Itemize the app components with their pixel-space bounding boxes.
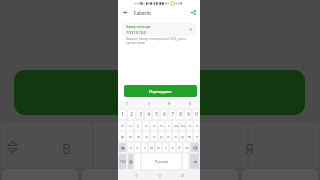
button[interactable]: 4 [145, 110, 151, 119]
staticText: В [189, 102, 192, 106]
button[interactable]: Back [120, 7, 131, 18]
staticText: 8 [179, 111, 182, 118]
button[interactable]: 5 [153, 110, 159, 119]
button[interactable]: к [143, 121, 149, 130]
staticText: т [165, 145, 167, 150]
button[interactable]: 8 [177, 110, 183, 119]
button[interactable]: и [156, 143, 161, 152]
button[interactable]: 7 [169, 110, 175, 119]
staticText: Н [168, 102, 171, 106]
button[interactable]: в [135, 132, 141, 141]
staticText: з [189, 123, 191, 128]
button[interactable]: 3 [137, 110, 143, 119]
staticText: В [62, 139, 72, 158]
button[interactable]: я [128, 143, 133, 152]
button[interactable]: е [151, 121, 157, 130]
button[interactable]: ы [127, 132, 133, 141]
staticText: ю [185, 145, 189, 150]
button[interactable]: ж [187, 132, 192, 141]
button[interactable]: н [159, 121, 164, 130]
staticText: а [145, 134, 148, 139]
staticText: н [160, 123, 163, 128]
staticText: ц [129, 123, 132, 128]
button[interactable]: С [124, 102, 131, 106]
button[interactable]: л [173, 132, 178, 141]
button[interactable]: В [187, 102, 194, 106]
staticText: 9 [187, 111, 190, 118]
button[interactable]: м [149, 143, 154, 152]
button[interactable]: , [135, 154, 140, 169]
button[interactable]: д [180, 132, 185, 141]
button[interactable]: Подтвердить [124, 85, 197, 97]
button[interactable]: ч [135, 143, 140, 152]
button[interactable]: Enter [190, 154, 199, 169]
staticText: ж [188, 134, 191, 139]
staticText: н [148, 102, 150, 106]
staticText: , [137, 160, 138, 164]
button[interactable]: ц [127, 121, 133, 130]
button[interactable]: Номер спонсора [122, 23, 196, 36]
staticText: о [167, 134, 170, 139]
staticText: Номер спонсора [126, 25, 151, 29]
button[interactable]: Н [166, 102, 173, 106]
staticText: в [137, 134, 140, 139]
staticText: . [185, 160, 186, 164]
button[interactable]: 9 [185, 110, 191, 119]
button[interactable]: Home [154, 170, 164, 180]
button[interactable]: т [163, 143, 168, 152]
staticText: 3 [139, 111, 142, 118]
button[interactable]: 1 [119, 110, 126, 119]
staticText: и [157, 145, 160, 150]
staticText: ?123 [120, 160, 126, 164]
button[interactable]: ф [119, 132, 125, 141]
button[interactable]: Back [131, 170, 141, 180]
button[interactable]: з [187, 121, 192, 130]
staticText: 2 [130, 111, 133, 118]
button[interactable]: о [166, 132, 171, 141]
staticText: х [196, 123, 198, 128]
button[interactable]: й [119, 121, 125, 130]
staticText: ф [121, 134, 124, 139]
button[interactable]: ?123 [119, 154, 126, 169]
button[interactable]: у [135, 121, 141, 130]
staticText: л [174, 134, 177, 139]
button[interactable]: а [143, 132, 149, 141]
button[interactable]: щ [180, 121, 185, 130]
button[interactable]: 2 [128, 110, 135, 119]
staticText: у [137, 123, 139, 128]
staticText: й [121, 123, 124, 128]
button[interactable]: р [159, 132, 164, 141]
button[interactable]: ю [184, 143, 189, 152]
button[interactable]: н [146, 102, 152, 106]
button[interactable]: х [194, 121, 199, 130]
staticText: 1 [121, 111, 124, 118]
staticText: 0 [195, 111, 198, 118]
button[interactable]: ь [170, 143, 175, 152]
staticText: Faberlic [134, 10, 152, 16]
button[interactable]: ш [173, 121, 178, 130]
button[interactable]: б [177, 143, 182, 152]
button[interactable]: с [142, 143, 147, 152]
staticText: м [150, 145, 153, 150]
button[interactable]: 6 [161, 110, 167, 119]
staticText: 6 [163, 111, 166, 118]
button[interactable]: Русский [142, 154, 181, 169]
staticText: Русский [155, 159, 168, 164]
button[interactable]: г [166, 121, 171, 130]
staticText: 5 [155, 111, 158, 118]
button[interactable]: Shift [119, 143, 126, 152]
button[interactable]: Share [188, 7, 199, 18]
staticText: ш [174, 123, 178, 128]
button[interactable]: Backspace [191, 143, 199, 152]
staticText: э [196, 134, 198, 139]
staticText: я [129, 145, 132, 150]
button[interactable]: Emoji [128, 154, 133, 169]
staticText: щ [181, 123, 185, 128]
button[interactable]: п [151, 132, 157, 141]
button[interactable]: Recent apps [177, 170, 187, 180]
button[interactable]: Clear [187, 26, 194, 33]
button[interactable]: 0 [193, 110, 199, 119]
button[interactable]: э [194, 132, 199, 141]
staticText: б [178, 145, 181, 150]
